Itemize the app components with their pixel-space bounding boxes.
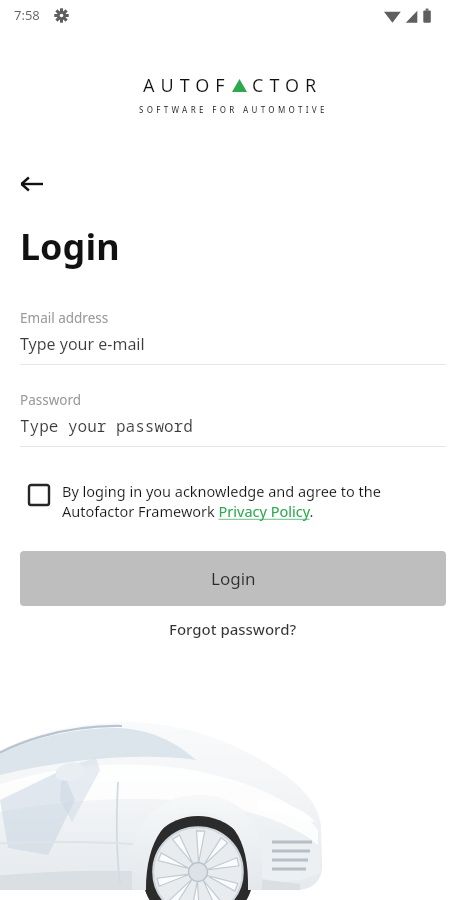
staticText: By loging in you acknowledge and agree t… <box>62 481 446 522</box>
staticText: 7:58 <box>14 6 40 24</box>
button[interactable]: Forgot password? <box>20 619 446 639</box>
staticText: CTOR <box>252 73 323 98</box>
staticText: Login <box>20 222 120 271</box>
staticText: Forgot password? <box>169 619 297 639</box>
staticText: Email address <box>20 309 109 327</box>
button[interactable]: By loging in you acknowledge and agree t… <box>20 481 446 522</box>
staticText: Type your password <box>20 415 193 437</box>
button[interactable]: Password <box>20 391 446 447</box>
staticText: Password <box>20 391 82 409</box>
staticText: SOFTWARE FOR AUTOMOTIVE <box>139 104 328 115</box>
button[interactable]: Login <box>20 551 446 606</box>
staticText: Login <box>211 567 256 590</box>
button[interactable]: Email address <box>20 309 446 365</box>
staticText: AUTOF <box>143 73 231 98</box>
button[interactable]: Back <box>20 168 52 200</box>
staticText: Type your e-mail <box>20 333 145 355</box>
